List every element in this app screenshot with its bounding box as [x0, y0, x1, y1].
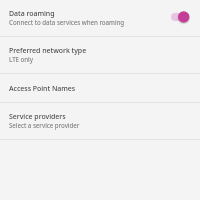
button[interactable]: Access Point Names [0, 74, 200, 102]
button[interactable]: Preferred network type [0, 37, 200, 73]
staticText: Data roaming [9, 9, 55, 19]
button[interactable]: Service providers [0, 103, 200, 139]
staticText: Connect to data services when roaming [9, 18, 125, 26]
staticText: Service providers [9, 112, 66, 122]
button[interactable]: Data roaming [0, 0, 200, 36]
button[interactable]: Data roaming switch [171, 10, 189, 24]
staticText: Preferred network type [9, 46, 87, 56]
staticText: Select a service provider [9, 121, 80, 129]
staticText: Access Point Names [9, 84, 76, 94]
staticText: LTE only [9, 55, 33, 63]
